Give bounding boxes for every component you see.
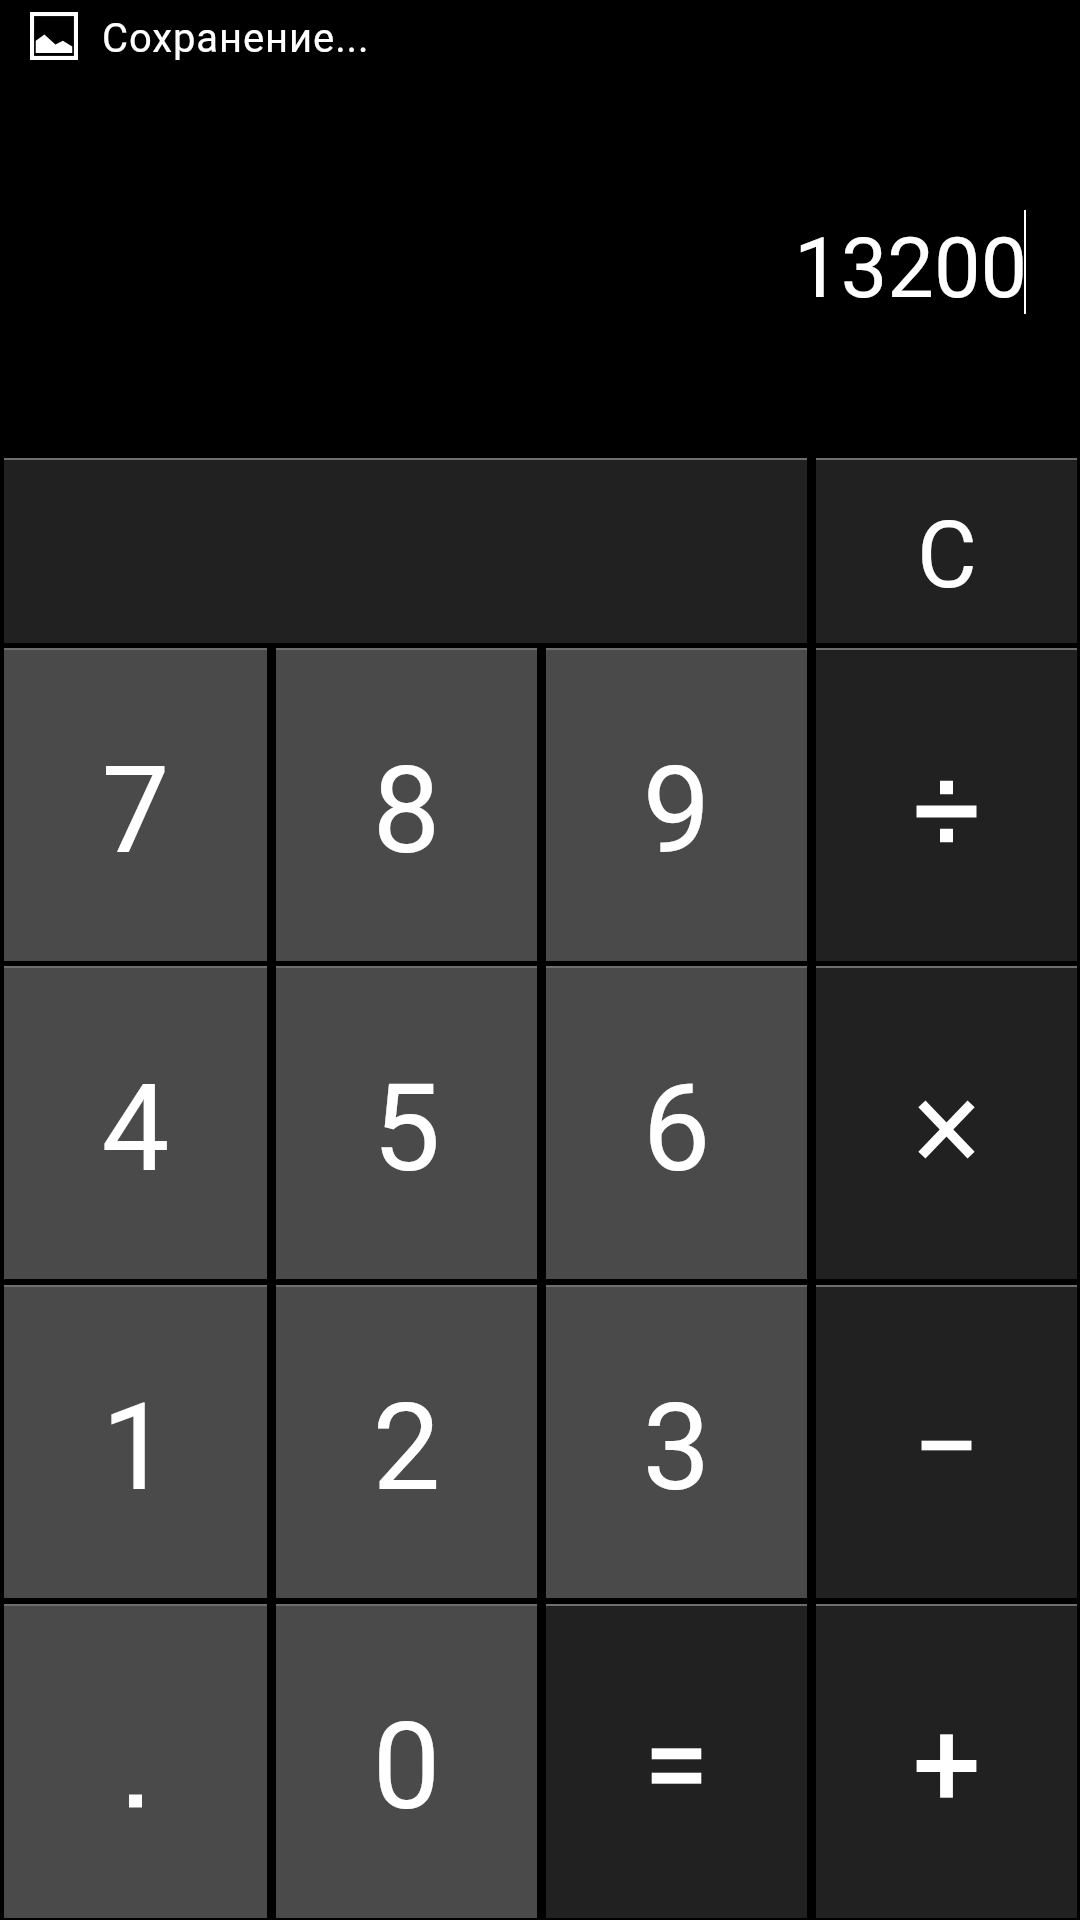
other: Saving image [30,12,78,60]
staticText: 9 [642,740,711,882]
button[interactable]: Calculator display, 13200 [0,217,1080,319]
button[interactable]: 5 [276,966,537,1279]
button[interactable]: History [4,458,807,643]
button[interactable]: Divide [816,648,1077,961]
button[interactable]: Equals [546,1604,807,1918]
staticText: Сохранение... [102,15,370,62]
button[interactable]: Subtract [816,1285,1077,1598]
button[interactable]: 9 [546,648,807,961]
button[interactable]: 3 [546,1285,807,1598]
button[interactable]: 4 [4,966,267,1279]
button[interactable]: 8 [276,648,537,961]
staticText: 4 [101,1058,170,1200]
staticText: 13200 [794,220,1028,317]
button[interactable]: Decimal point [4,1604,267,1918]
staticText: 5 [372,1058,441,1200]
button[interactable]: 2 [276,1285,537,1598]
staticText: C [917,502,977,610]
button[interactable]: 0 [276,1604,537,1918]
button[interactable]: 6 [546,966,807,1279]
button[interactable]: Clear [816,458,1077,643]
staticText: 2 [372,1377,441,1519]
button[interactable]: 7 [4,648,267,961]
button[interactable]: Multiply [816,966,1077,1279]
staticText: 8 [372,740,441,882]
staticText: 7 [101,740,170,882]
staticText: 1 [101,1377,170,1519]
staticText: 3 [642,1377,711,1519]
staticText: 6 [642,1058,711,1200]
staticText: 0 [372,1696,441,1838]
button[interactable]: 1 [4,1285,267,1598]
button[interactable]: Add [816,1604,1077,1918]
